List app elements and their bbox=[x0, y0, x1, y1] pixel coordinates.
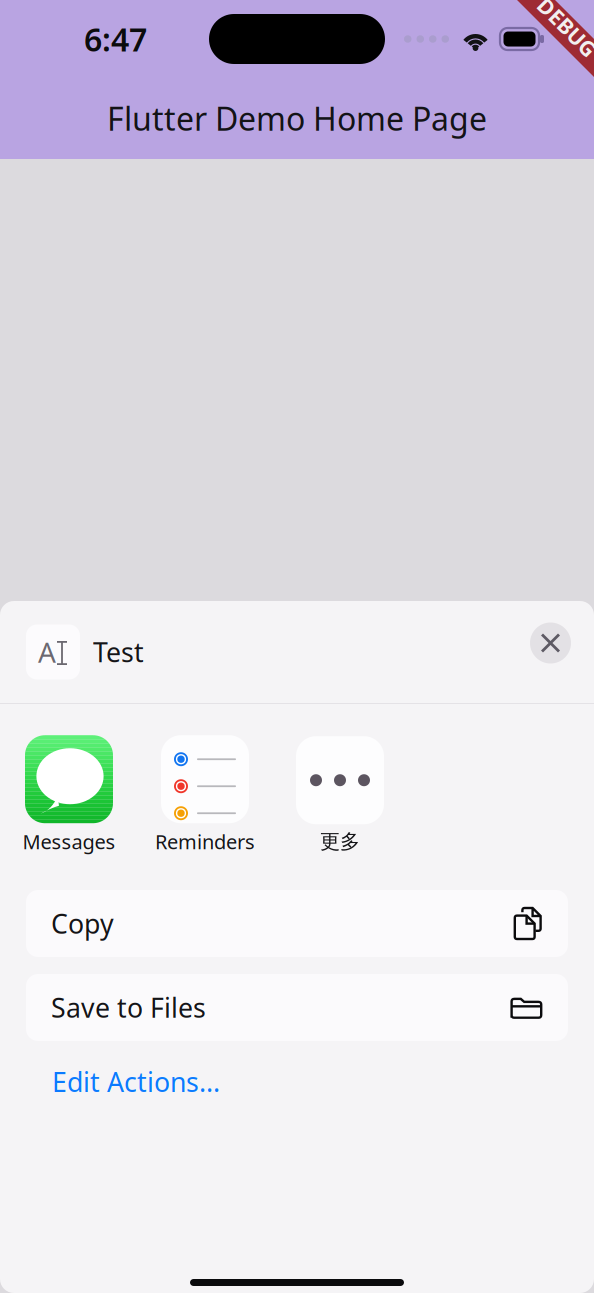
button[interactable]: Reminders bbox=[161, 735, 249, 855]
staticText: Reminders bbox=[155, 828, 255, 855]
staticText: A bbox=[38, 633, 56, 671]
button[interactable]: Save to Files bbox=[26, 974, 568, 1041]
staticText: Save to Files bbox=[51, 990, 206, 1025]
button[interactable]: Edit Actions... bbox=[52, 1064, 220, 1099]
staticText: Flutter Demo Home Page bbox=[107, 97, 487, 139]
button[interactable]: 更多 bbox=[296, 736, 384, 854]
staticText: Copy bbox=[51, 906, 114, 941]
staticText: Test bbox=[93, 634, 144, 670]
button[interactable]: Messages bbox=[25, 735, 113, 855]
staticText: 更多 bbox=[320, 829, 360, 854]
staticText: Messages bbox=[22, 828, 115, 855]
button[interactable]: Copy bbox=[26, 890, 568, 957]
staticText: 6:47 bbox=[84, 18, 147, 60]
staticText: Edit Actions... bbox=[52, 1064, 220, 1099]
button[interactable]: Close bbox=[530, 622, 571, 663]
staticText: DEBUG bbox=[530, 13, 594, 41]
